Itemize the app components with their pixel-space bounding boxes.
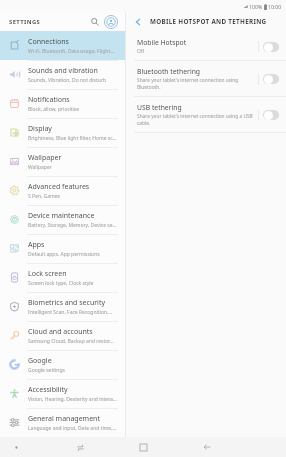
button[interactable]: Sounds and vibration xyxy=(0,60,125,89)
staticText: Google xyxy=(28,356,52,366)
button[interactable]: Notifications xyxy=(0,89,125,118)
staticText: Samsung Cloud, Backup and restor... xyxy=(28,338,114,345)
button[interactable]: More options xyxy=(9,440,23,454)
button[interactable]: Display xyxy=(0,118,125,147)
staticText: General management xyxy=(28,414,100,424)
staticText: Sounds and vibration xyxy=(28,66,98,76)
staticText: S Pen, Games xyxy=(28,193,60,200)
button[interactable]: Wallpaper xyxy=(0,147,125,176)
button[interactable]: Back xyxy=(175,437,238,457)
button[interactable]: Biometrics and security xyxy=(0,292,125,321)
staticText: Notifications xyxy=(28,95,70,105)
button[interactable]: Apps xyxy=(0,234,125,263)
button[interactable]: Account xyxy=(103,14,119,30)
staticText: Language and input, Date and time,... xyxy=(28,425,117,432)
staticText: Brightness, Blue light filter, Home sc..… xyxy=(28,135,117,142)
staticText: Default apps, App permissions xyxy=(28,251,100,258)
staticText: Block, allow, prioritise xyxy=(28,106,80,113)
staticText: Vision, Hearing, Dexterity and intera... xyxy=(28,396,117,403)
staticText: Bluetooth tethering xyxy=(137,67,201,76)
staticText: Wi-Fi, Bluetooth, Data usage, Flight... xyxy=(28,48,115,55)
staticText: Screen lock type, Clock style xyxy=(28,280,94,287)
staticText: USB tethering xyxy=(137,103,182,112)
button[interactable]: Mobile Hotspot xyxy=(126,31,286,60)
button[interactable]: Search xyxy=(87,14,103,30)
button[interactable]: Back xyxy=(130,14,145,29)
button[interactable]: Toggle xyxy=(263,42,279,52)
button[interactable]: Home xyxy=(112,437,175,457)
button[interactable]: Accessibility xyxy=(0,379,125,408)
staticText: Mobile Hotspot xyxy=(137,38,187,47)
staticText: MOBILE HOTSPOT AND TETHERING xyxy=(150,17,267,26)
staticText: Accessibility xyxy=(28,385,68,395)
staticText: Google settings xyxy=(28,367,65,374)
button[interactable]: General management xyxy=(0,408,125,437)
staticText: Battery, Storage, Memory, Device se... xyxy=(28,222,117,229)
staticText: Cloud and accounts xyxy=(28,327,93,337)
staticText: Sounds, Vibration, Do not disturb xyxy=(28,77,107,84)
staticText: Off xyxy=(137,48,145,55)
staticText: Device maintenance xyxy=(28,211,95,221)
staticText: SETTINGS xyxy=(9,18,41,26)
button[interactable]: Recent apps xyxy=(49,437,112,457)
staticText: Bluetooth. xyxy=(137,84,161,91)
staticText: Biometrics and security xyxy=(28,298,105,308)
staticText: Lock screen xyxy=(28,269,67,279)
button[interactable]: USB tethering xyxy=(126,96,286,132)
button[interactable]: Google xyxy=(0,350,125,379)
staticText: Share your tablet's internet connection … xyxy=(137,113,253,120)
staticText: 100% xyxy=(249,3,263,10)
button[interactable]: Advanced features xyxy=(0,176,125,205)
staticText: Advanced features xyxy=(28,182,90,192)
button[interactable]: Device maintenance xyxy=(0,205,125,234)
staticText: Intelligent Scan, Face Recognition,... xyxy=(28,309,113,316)
button[interactable]: Cloud and accounts xyxy=(0,321,125,350)
button[interactable]: Lock screen xyxy=(0,263,125,292)
staticText: Share your tablet's internet connection … xyxy=(137,77,239,84)
staticText: 10:00 xyxy=(268,3,282,10)
button[interactable]: Toggle xyxy=(263,110,279,120)
staticText: cable. xyxy=(137,120,151,127)
button[interactable]: Toggle xyxy=(263,74,279,84)
staticText: Apps xyxy=(28,240,45,250)
button[interactable]: Bluetooth tethering xyxy=(126,60,286,96)
button[interactable]: Connections xyxy=(0,31,125,60)
staticText: Connections xyxy=(28,37,69,47)
staticText: Wallpaper xyxy=(28,153,62,163)
staticText: Wallpaper xyxy=(28,164,52,171)
staticText: Display xyxy=(28,124,52,134)
